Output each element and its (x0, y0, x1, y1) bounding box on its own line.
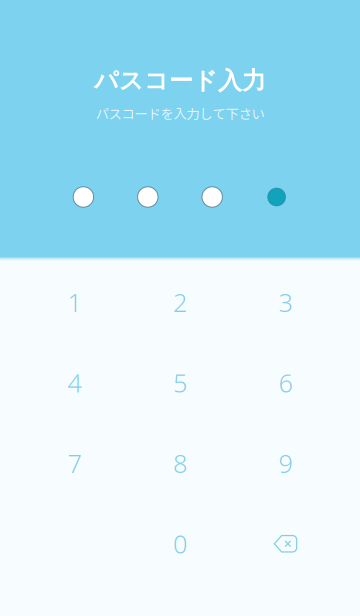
button[interactable]: 0 (127, 503, 233, 584)
staticText: 1 (67, 285, 81, 319)
staticText: 0 (173, 527, 187, 560)
staticText: パスコード入力 (94, 66, 266, 95)
staticText: 6 (278, 366, 292, 399)
button[interactable]: 5 (127, 342, 233, 423)
button[interactable]: 2 (127, 262, 233, 342)
button[interactable]: 8 (127, 423, 233, 503)
staticText: 8 (173, 446, 187, 480)
staticText: 7 (67, 446, 81, 480)
button[interactable]: 9 (233, 423, 338, 503)
staticText: 2 (173, 285, 187, 319)
button[interactable]: Delete (233, 503, 338, 584)
button[interactable]: 3 (233, 262, 338, 342)
staticText: パスコードを入力して下さい (95, 103, 264, 123)
staticText: 9 (278, 446, 292, 480)
staticText: 3 (278, 285, 292, 319)
button[interactable]: 4 (22, 342, 127, 423)
staticText: 4 (67, 366, 81, 399)
button[interactable]: 7 (22, 423, 127, 503)
button[interactable]: 6 (233, 342, 338, 423)
button[interactable]: 1 (22, 262, 127, 342)
staticText: 5 (173, 366, 187, 399)
